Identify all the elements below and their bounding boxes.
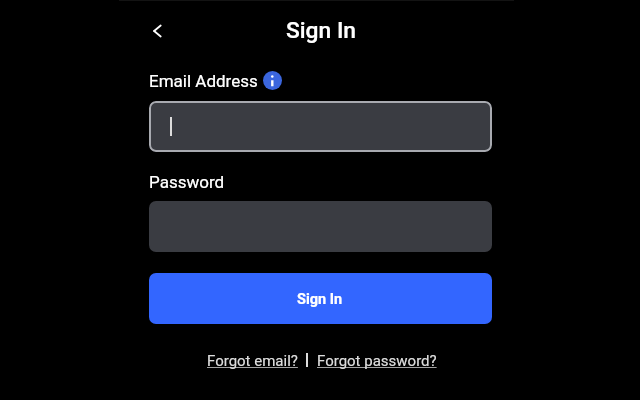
staticText: Sign In [286, 17, 356, 44]
staticText: Password [149, 172, 225, 192]
staticText: Email Address [149, 71, 258, 91]
staticText: Forgot email? [207, 352, 298, 370]
staticText: Forgot password? [317, 352, 437, 370]
button[interactable] [149, 201, 492, 252]
button[interactable]: Forgot email? [205, 350, 296, 368]
staticText: Sign In [297, 291, 343, 308]
button[interactable]: Sign In [149, 273, 492, 324]
button[interactable]: Forgot password? [315, 350, 435, 368]
button[interactable] [149, 101, 492, 152]
button[interactable]: Back [142, 16, 172, 46]
button[interactable]: Information about email address [263, 71, 282, 90]
